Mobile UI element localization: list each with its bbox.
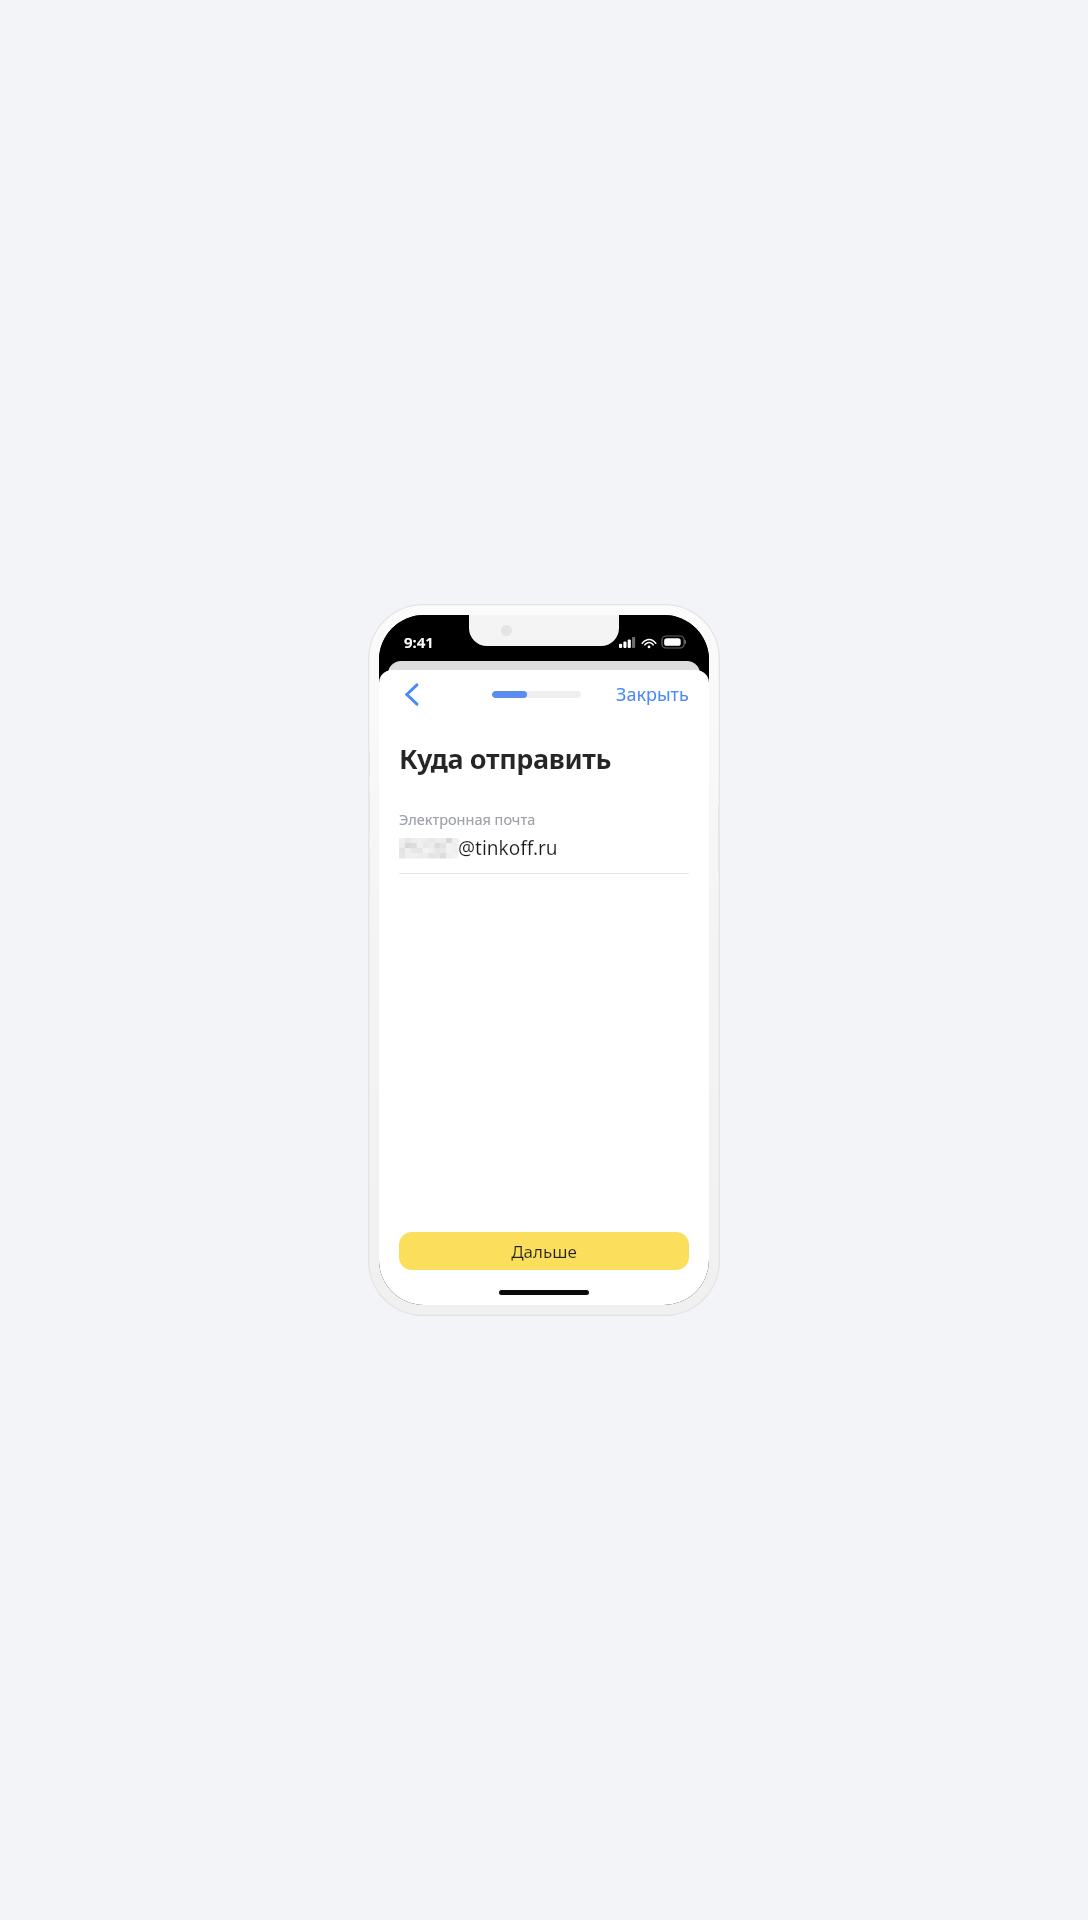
staticText: Дальше xyxy=(511,1240,577,1263)
button[interactable]: Назад xyxy=(389,672,433,716)
staticText: 9:41 xyxy=(404,632,434,652)
staticText: Электронная почта xyxy=(399,809,536,829)
staticText: Закрыть xyxy=(616,682,689,707)
button[interactable]: Закрыть xyxy=(596,674,709,715)
staticText: Куда отправить xyxy=(399,740,612,777)
staticText: @tinkoff.ru xyxy=(458,835,558,861)
button[interactable]: Дальше xyxy=(399,1232,689,1270)
